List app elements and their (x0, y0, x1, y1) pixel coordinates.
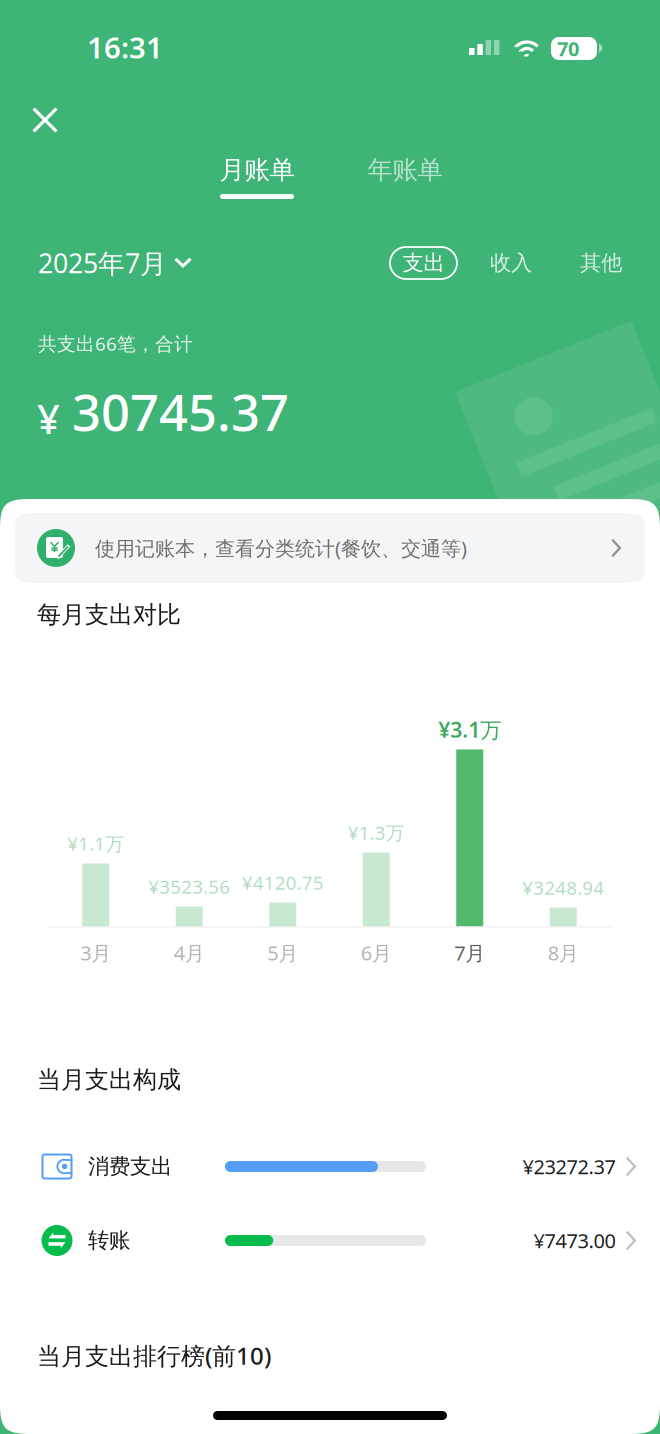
staticText: 转账 (88, 1227, 130, 1254)
button[interactable]: 月账单 (183, 153, 331, 201)
staticText: 16:31 (87, 27, 163, 66)
staticText: 支出 (402, 250, 444, 276)
staticText: ¥ (37, 392, 60, 445)
staticText: 共支出66笔，合计 (38, 331, 193, 356)
button[interactable]: 支出 (390, 247, 457, 279)
staticText: ¥1.1万 (67, 831, 124, 856)
staticText: ¥3248.94 (522, 875, 604, 900)
button[interactable]: 消费支出 (0, 1129, 660, 1203)
button[interactable]: Close (17, 92, 73, 148)
staticText: 月账单 (219, 154, 294, 185)
staticText: 7月 (454, 939, 485, 966)
staticText: 年账单 (367, 154, 442, 185)
button[interactable]: 2025年7月 (0, 241, 192, 285)
staticText: ¥1.3万 (348, 820, 405, 845)
button[interactable]: 收入 (490, 247, 532, 279)
staticText: 30745.37 (72, 378, 289, 445)
staticText: 其他 (580, 250, 622, 276)
staticText: 使用记账本，查看分类统计(餐饮、交通等) (95, 535, 467, 561)
staticText: ¥3.1万 (438, 715, 501, 744)
staticText: 3月 (80, 939, 111, 966)
staticText: 当月支出排行榜(前10) (37, 1339, 271, 1371)
staticText: 当月支出构成 (37, 1065, 181, 1094)
staticText: ¥4120.75 (242, 870, 324, 895)
button[interactable]: 其他 (580, 247, 622, 279)
button[interactable]: 年账单 (331, 153, 479, 201)
staticText: 6月 (361, 939, 392, 966)
staticText: ¥3523.56 (148, 874, 230, 899)
staticText: ¥7473.00 (534, 1227, 616, 1254)
staticText: 每月支出对比 (37, 600, 181, 629)
staticText: 4月 (174, 939, 205, 966)
staticText: ¥23272.37 (523, 1153, 616, 1180)
staticText: 5月 (267, 939, 298, 966)
staticText: 8月 (548, 939, 579, 966)
staticText: 收入 (490, 250, 532, 276)
button[interactable]: 使用记账本，查看分类统计(餐饮、交通等) (15, 513, 645, 583)
staticText: 2025年7月 (38, 245, 167, 281)
staticText: 消费支出 (88, 1153, 172, 1180)
button[interactable]: 转账 (0, 1203, 660, 1277)
staticText: 70 (557, 35, 579, 62)
